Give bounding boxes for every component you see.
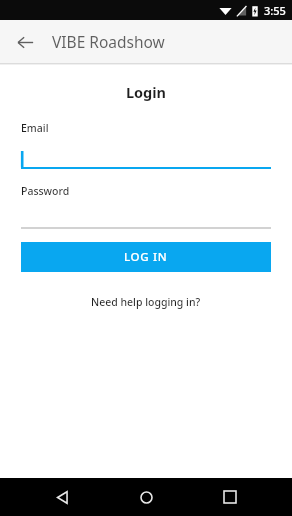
- button[interactable]: Back: [40, 478, 84, 516]
- staticText: Password: [21, 184, 70, 198]
- staticText: 3:55: [264, 3, 286, 18]
- button[interactable]: Home: [124, 478, 168, 516]
- button[interactable]: [21, 198, 271, 229]
- staticText: Email: [21, 121, 49, 135]
- button[interactable]: [21, 135, 271, 169]
- button[interactable]: Back: [8, 25, 42, 59]
- staticText: Need help logging in?: [91, 295, 201, 309]
- staticText: Login: [21, 82, 271, 102]
- button[interactable]: Need help logging in?: [87, 291, 205, 313]
- button[interactable]: Recent apps: [208, 478, 252, 516]
- staticText: VIBE Roadshow: [52, 31, 165, 52]
- button[interactable]: LOG IN: [21, 242, 271, 272]
- staticText: LOG IN: [124, 249, 168, 265]
